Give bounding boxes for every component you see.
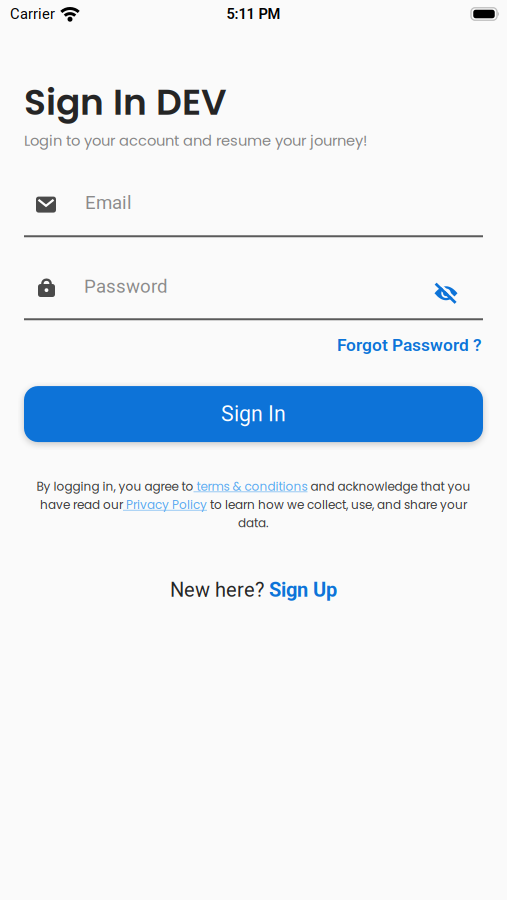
staticText: Sign Up — [269, 578, 337, 601]
staticText: Email — [85, 192, 132, 213]
button[interactable]: Email — [24, 192, 483, 213]
button[interactable]: Privacy Policy — [123, 496, 207, 513]
button[interactable]: terms & conditions — [193, 478, 307, 495]
staticText: New here? — [170, 578, 269, 601]
staticText: Forgot Password ? — [337, 335, 482, 355]
button[interactable]: Sign In — [24, 386, 483, 442]
staticText: Carrier — [10, 6, 55, 22]
button[interactable]: Forgot Password ? — [337, 335, 482, 355]
staticText: Sign In — [221, 402, 286, 426]
staticText: Password — [84, 276, 168, 297]
button[interactable]: Sign Up — [269, 578, 337, 601]
staticText: to learn how we collect, use, and share … — [207, 496, 467, 513]
staticText: Login to your account and resume your jo… — [24, 130, 367, 151]
button[interactable]: Password — [24, 276, 168, 297]
staticText: have read our — [40, 496, 123, 513]
button[interactable]: Show password — [434, 280, 458, 304]
staticText: Privacy Policy — [123, 496, 207, 513]
staticText: data. — [238, 515, 269, 531]
staticText: Sign In DEV — [24, 77, 227, 127]
staticText: and acknowledge that you — [307, 478, 470, 495]
staticText: By logging in, you agree to — [36, 478, 193, 495]
staticText: 5:11 PM — [226, 6, 280, 22]
staticText: terms & conditions — [193, 478, 307, 495]
